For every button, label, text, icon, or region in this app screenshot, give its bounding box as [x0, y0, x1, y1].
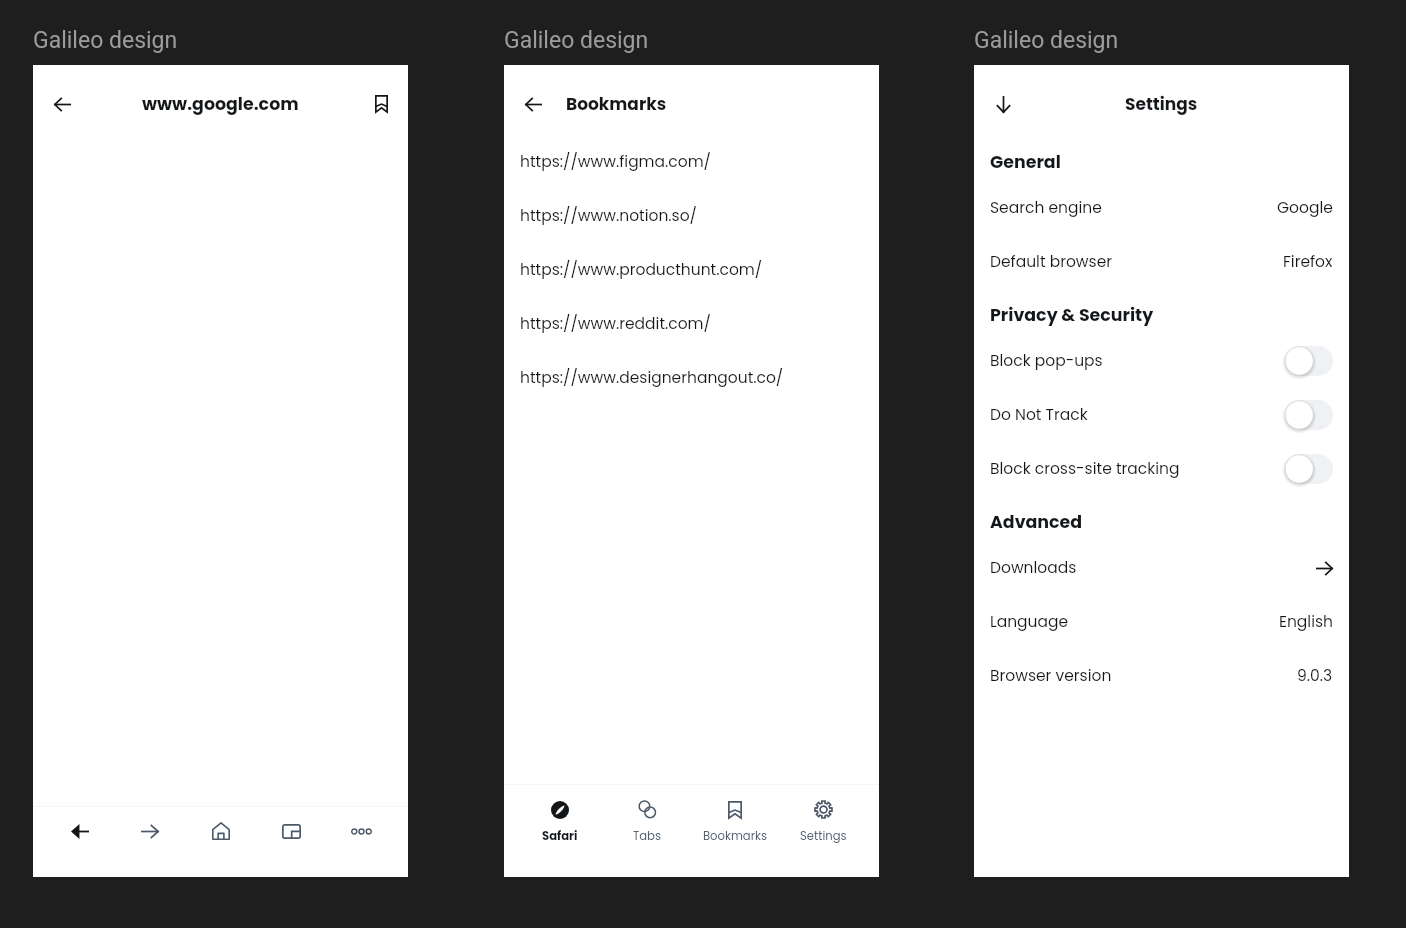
button[interactable]: Toggle — [1285, 400, 1333, 430]
staticText: 9.0.3 — [1297, 665, 1333, 687]
staticText: Language — [990, 611, 1069, 633]
staticText: Block cross-site tracking — [990, 458, 1180, 480]
button[interactable]: Back — [511, 82, 555, 126]
staticText: Do Not Track — [990, 404, 1088, 426]
staticText: Downloads — [990, 557, 1077, 579]
button[interactable]: Forward — [127, 807, 173, 855]
staticText: Firefox — [1283, 251, 1333, 273]
staticText: https://www.producthunt.com/ — [520, 259, 763, 281]
button[interactable]: https://www.producthunt.com/ — [504, 243, 879, 297]
staticText: Search engine — [990, 197, 1102, 219]
staticText: Advanced — [990, 510, 1083, 534]
button[interactable]: More options — [338, 807, 384, 855]
staticText: www.google.com — [142, 92, 299, 116]
staticText: Safari — [542, 828, 578, 844]
button[interactable]: Do Not Track — [974, 388, 1349, 442]
staticText: Privacy & Security — [990, 303, 1154, 327]
button[interactable]: Settings — [779, 785, 867, 877]
button[interactable]: Toggle — [1285, 346, 1333, 376]
staticText: Bookmarks — [566, 92, 667, 116]
button[interactable]: Block pop-ups — [974, 334, 1349, 388]
button[interactable]: Browser version — [974, 649, 1349, 703]
button[interactable]: Default browser — [974, 235, 1349, 289]
staticText: Settings — [800, 828, 847, 844]
staticText: Galileo design — [974, 27, 1119, 54]
button[interactable]: Downloads — [974, 541, 1349, 595]
staticText: Google — [1277, 197, 1333, 219]
staticText: Tabs — [633, 828, 661, 844]
staticText: Galileo design — [504, 27, 649, 54]
button[interactable]: https://www.notion.so/ — [504, 189, 879, 243]
staticText: https://www.designerhangout.co/ — [520, 367, 784, 389]
staticText: Galileo design — [33, 27, 178, 54]
button[interactable]: Dismiss — [981, 82, 1025, 126]
staticText: General — [990, 150, 1061, 174]
button[interactable]: Back — [57, 807, 103, 855]
button[interactable]: Block cross-site tracking — [974, 442, 1349, 496]
button[interactable]: Tabs overview — [268, 807, 314, 855]
staticText: Default browser — [990, 251, 1113, 273]
staticText: Bookmarks — [703, 828, 768, 844]
button[interactable]: Tabs — [603, 785, 691, 877]
staticText: https://www.reddit.com/ — [520, 313, 711, 335]
staticText: Browser version — [990, 665, 1112, 687]
staticText: Block pop-ups — [990, 350, 1103, 372]
button[interactable]: Home — [198, 807, 244, 855]
button[interactable]: Search engine — [974, 181, 1349, 235]
button[interactable]: Bookmarks — [691, 785, 779, 877]
button[interactable]: Back — [40, 82, 84, 126]
button[interactable]: https://www.reddit.com/ — [504, 297, 879, 351]
button[interactable]: https://www.designerhangout.co/ — [504, 351, 879, 405]
button[interactable]: Add bookmark — [359, 82, 403, 126]
staticText: https://www.figma.com/ — [520, 151, 711, 173]
staticText: Settings — [1125, 92, 1198, 116]
button[interactable]: Safari — [516, 785, 603, 877]
button[interactable]: Language — [974, 595, 1349, 649]
button[interactable]: https://www.figma.com/ — [504, 135, 879, 189]
button[interactable]: Toggle — [1285, 454, 1333, 484]
staticText: https://www.notion.so/ — [520, 205, 697, 227]
staticText: English — [1279, 611, 1333, 633]
